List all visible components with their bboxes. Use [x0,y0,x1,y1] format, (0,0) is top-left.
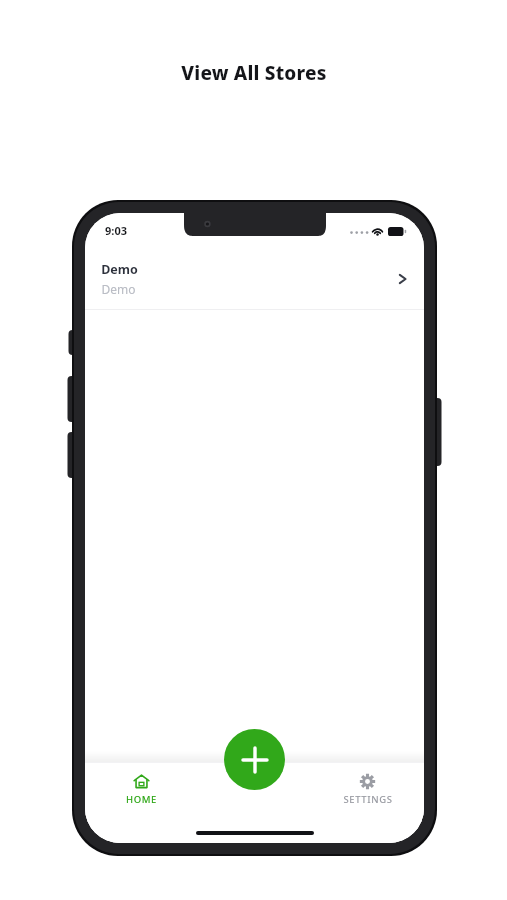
staticText: Demo [101,261,138,278]
button[interactable]: Add store [224,729,285,790]
button[interactable]: Demo [85,257,424,309]
staticText: Demo [101,281,136,297]
staticText: HOME [126,793,157,806]
staticText: SETTINGS [343,793,393,806]
staticText: 9:03 [105,223,127,238]
button[interactable]: HOME [85,771,198,808]
button[interactable]: SETTINGS [311,771,424,808]
staticText: View All Stores [181,60,327,86]
